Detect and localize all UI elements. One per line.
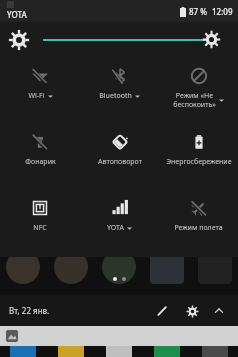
- staticText: YOTA: [7, 9, 27, 20]
- staticText: Bluetooth: [99, 91, 132, 101]
- staticText: Автоповорот: [98, 157, 142, 167]
- staticText: 87 %: [189, 6, 208, 17]
- button[interactable]: Режим полета: [159, 192, 238, 252]
- staticText: Фонарик: [25, 157, 56, 167]
- button[interactable]: Collapse: [208, 300, 230, 322]
- staticText: Режим полета: [174, 223, 223, 233]
- button[interactable]: Brightness: [0, 22, 238, 57]
- staticText: 12:09: [212, 6, 233, 17]
- staticText: NFC: [33, 223, 47, 233]
- button[interactable]: Режим «Не беспокоить»: [159, 60, 238, 120]
- button[interactable]: Автоповорот: [80, 126, 159, 186]
- button[interactable]: Bluetooth: [80, 60, 159, 120]
- staticText: Режим «Не беспокоить»: [173, 91, 216, 109]
- button[interactable]: Settings: [180, 299, 204, 323]
- button[interactable]: NFC: [0, 192, 80, 252]
- staticText: Энергосбережение: [166, 157, 232, 167]
- staticText: Вт, 22 янв.: [9, 305, 50, 316]
- staticText: Wi-Fi: [28, 91, 45, 101]
- staticText: YOTA: [107, 223, 124, 233]
- button[interactable]: Edit: [150, 299, 174, 323]
- button[interactable]: YOTA: [80, 192, 159, 252]
- button[interactable]: Wi-Fi: [0, 60, 80, 120]
- button[interactable]: Фонарик: [0, 126, 80, 186]
- button[interactable]: Энергосбережение: [159, 126, 238, 186]
